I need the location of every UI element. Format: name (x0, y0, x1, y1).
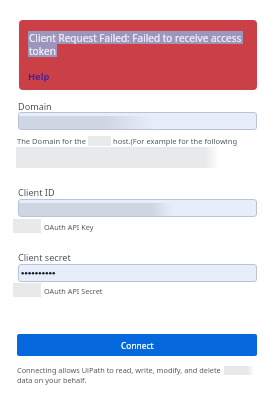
staticText: Client Request Failed: Failed to receive… (29, 31, 242, 44)
button[interactable]: Help (28, 70, 50, 83)
button[interactable]: Connect (17, 334, 257, 356)
staticText: OAuth API Secret (44, 286, 103, 296)
staticText: data on your behalf. (17, 375, 87, 385)
staticText: The Domain for the (17, 136, 88, 146)
staticText: Client ID (18, 186, 55, 198)
staticText: Client secret (18, 251, 71, 263)
staticText: host.(For example for the following (111, 136, 238, 146)
staticText: token (29, 44, 56, 57)
button[interactable] (18, 264, 257, 282)
staticText: OAuth API Key (44, 222, 94, 232)
staticText: Domain (18, 100, 52, 112)
button[interactable] (18, 112, 257, 130)
staticText: Connect (121, 340, 154, 351)
staticText: Connecting allows UiPath to read, write,… (17, 365, 221, 375)
staticText: Help (28, 70, 50, 83)
button[interactable]: Client Request Failed: Failed to receive… (19, 20, 257, 90)
button[interactable] (18, 199, 257, 217)
